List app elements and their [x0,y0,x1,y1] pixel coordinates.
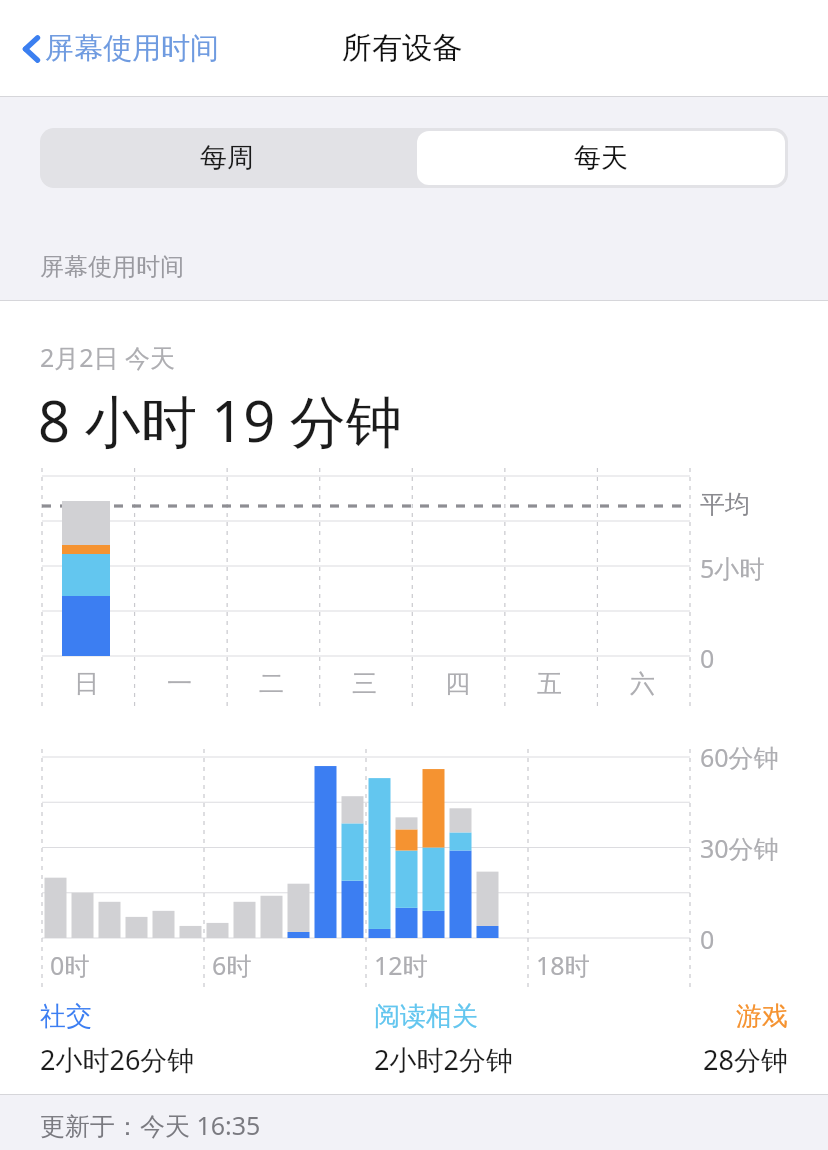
staticText: 8 小时 19 分钟 [38,382,402,458]
staticText: 一 [167,668,192,699]
staticText: 2月2日 今天 [40,340,176,374]
staticText: 日 [74,668,99,699]
button[interactable]: 每周 [40,128,414,188]
staticText: 6时 [212,948,252,982]
staticText: 所有设备 [342,29,462,67]
button[interactable]: 社交 [40,1000,195,1078]
staticText: 屏幕使用时间 [40,252,184,282]
staticText: 30分钟 [700,831,779,865]
staticText: 三 [352,668,377,699]
staticText: 每天 [574,141,628,175]
staticText: 18时 [536,948,590,982]
staticText: 平均 [700,489,750,520]
staticText: 阅读相关 [374,1000,478,1033]
staticText: 二 [259,668,284,699]
button[interactable]: 阅读相关 [374,1000,513,1078]
button[interactable]: 每天 [417,131,785,185]
button[interactable]: 屏幕使用时间 [22,30,225,67]
staticText: 社交 [40,1000,92,1033]
staticText: 0时 [50,948,90,982]
staticText: 游戏 [736,1000,788,1033]
staticText: 0 [700,641,715,675]
staticText: 60分钟 [700,740,779,774]
button[interactable]: 游戏 [600,1000,788,1078]
staticText: 2小时2分钟 [374,1041,513,1078]
staticText: 28分钟 [703,1041,788,1078]
staticText: 六 [630,668,655,699]
staticText: 2小时26分钟 [40,1041,195,1078]
staticText: 0 [700,922,715,956]
staticText: 五 [537,668,562,699]
staticText: 5小时 [700,551,765,585]
staticText: 屏幕使用时间 [45,30,219,67]
staticText: 每周 [200,141,254,175]
staticText: 12时 [374,948,428,982]
staticText: 更新于：今天 16:35 [40,1108,261,1142]
staticText: 四 [445,668,470,699]
